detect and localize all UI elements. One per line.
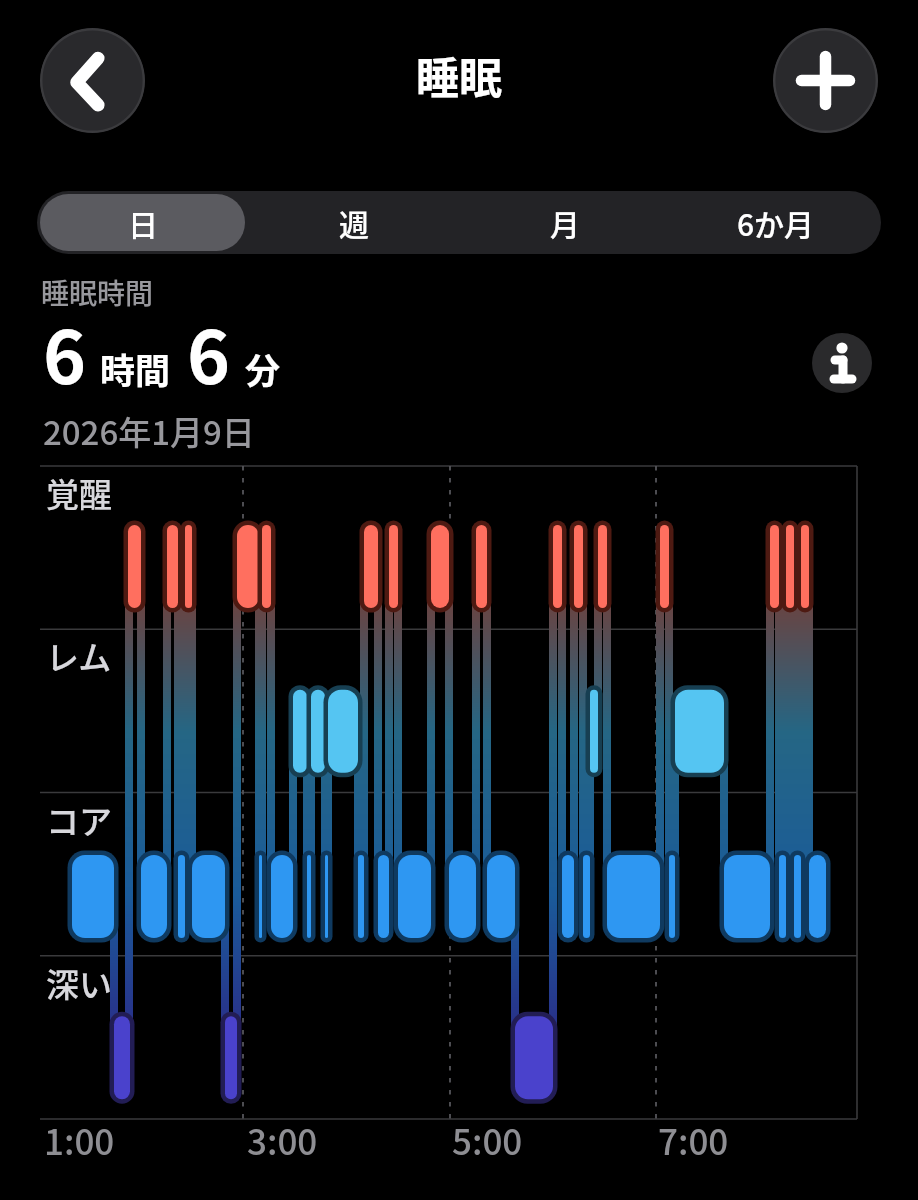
button[interactable]: 6か月 <box>670 191 881 254</box>
staticText: コア <box>46 796 112 844</box>
button[interactable] <box>773 28 878 133</box>
staticText: 月 <box>550 201 580 244</box>
button[interactable]: 月 <box>459 191 670 254</box>
staticText: 6か月 <box>737 201 815 244</box>
staticText: 分 <box>245 343 281 394</box>
staticText: 2026年1月9日 <box>43 407 255 455</box>
button[interactable] <box>812 333 872 393</box>
staticText: 5:00 <box>452 1114 523 1165</box>
staticText: 深い <box>46 959 112 1007</box>
staticText: 3:00 <box>247 1114 318 1165</box>
staticText: 睡眠 <box>416 44 502 106</box>
button[interactable]: 週 <box>248 191 459 254</box>
staticText: 6 <box>187 299 231 405</box>
staticText: 覚醒 <box>46 469 112 517</box>
staticText: 1:00 <box>44 1114 115 1165</box>
button[interactable] <box>40 28 145 133</box>
staticText: 睡眠時間 <box>41 272 154 313</box>
staticText: 時間 <box>100 343 171 394</box>
button[interactable]: 日 <box>37 191 248 254</box>
staticText: レム <box>46 632 112 680</box>
staticText: 日 <box>128 201 158 244</box>
staticText: 6 <box>43 299 87 405</box>
staticText: 7:00 <box>658 1114 729 1165</box>
staticText: 週 <box>339 201 369 244</box>
